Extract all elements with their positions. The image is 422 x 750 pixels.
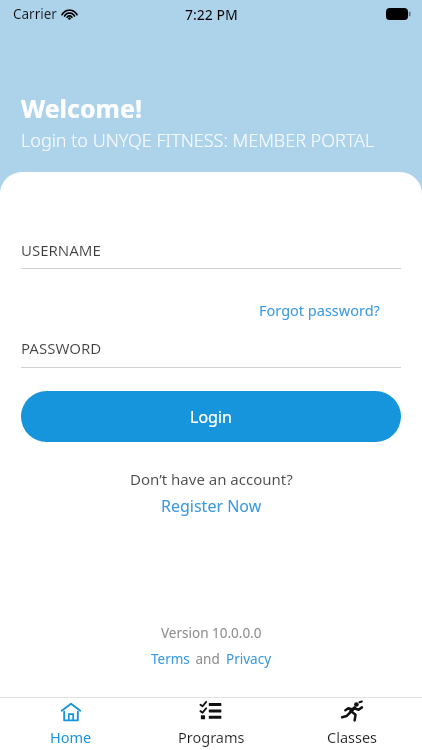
staticText: PASSWORD bbox=[21, 338, 102, 358]
staticText: Don’t have an account? bbox=[130, 469, 293, 489]
other: Home bbox=[60, 701, 82, 723]
button[interactable]: Privacy bbox=[224, 648, 274, 670]
other: Classes bbox=[341, 701, 363, 723]
staticText: Welcome! bbox=[21, 91, 142, 125]
button[interactable]: Terms bbox=[149, 648, 192, 670]
button[interactable]: Home bbox=[1, 698, 141, 750]
staticText: Carrier bbox=[13, 5, 57, 23]
staticText: 7:22 PM bbox=[185, 5, 238, 24]
staticText: Programs bbox=[178, 727, 245, 747]
staticText: Privacy bbox=[226, 650, 272, 668]
staticText: Register Now bbox=[161, 495, 262, 517]
staticText: and bbox=[192, 650, 224, 668]
staticText: Login bbox=[190, 406, 232, 428]
other: Programs bbox=[200, 701, 222, 723]
staticText: Classes bbox=[327, 727, 378, 747]
button[interactable]: Programs bbox=[141, 698, 281, 750]
staticText: Version 10.0.0.0 bbox=[161, 624, 262, 642]
button[interactable]: Register Now bbox=[155, 492, 268, 520]
button[interactable]: Forgot password? bbox=[255, 297, 384, 323]
button[interactable]: Login bbox=[21, 391, 401, 442]
staticText: Forgot password? bbox=[259, 300, 380, 320]
staticText: USERNAME bbox=[21, 240, 101, 260]
button[interactable]: Classes bbox=[282, 698, 422, 750]
staticText: Terms bbox=[151, 650, 190, 668]
staticText: Home bbox=[50, 727, 92, 747]
staticText: Login to UNYQE FITNESS: MEMBER PORTAL bbox=[21, 128, 375, 153]
